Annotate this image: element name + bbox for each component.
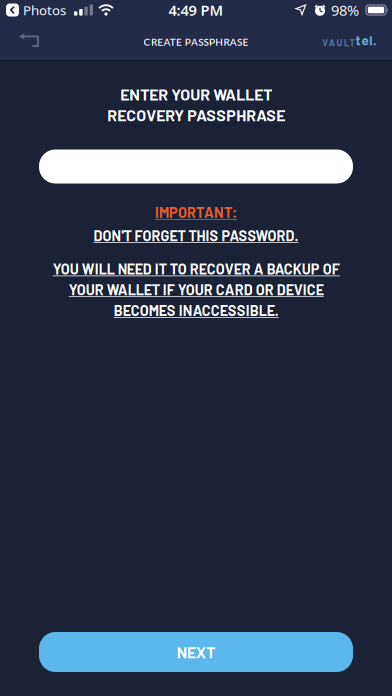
staticText: VAULT	[322, 37, 355, 48]
staticText: tel.	[356, 32, 377, 48]
staticText: Photos	[23, 1, 66, 19]
staticText: IMPORTANT:	[155, 203, 237, 221]
staticText: 98%	[331, 0, 359, 20]
button[interactable]: NEXT	[39, 632, 353, 672]
staticText: CREATE PASSPHRASE	[144, 36, 248, 48]
staticText: NEXT	[177, 643, 215, 661]
staticText: 4:49 PM	[168, 0, 223, 20]
button[interactable]: Back	[0, 23, 39, 57]
staticText: YOU WILL NEED IT TO RECOVER A BACKUP OF …	[52, 260, 339, 319]
button[interactable]: Passphrase entry field	[39, 149, 353, 183]
button[interactable]: Back to Photos	[6, 1, 66, 19]
staticText: DON'T FORGET THIS PASSWORD.	[93, 227, 298, 244]
staticText: ENTER YOUR WALLET RECOVERY PASSPHRASE	[107, 84, 285, 124]
